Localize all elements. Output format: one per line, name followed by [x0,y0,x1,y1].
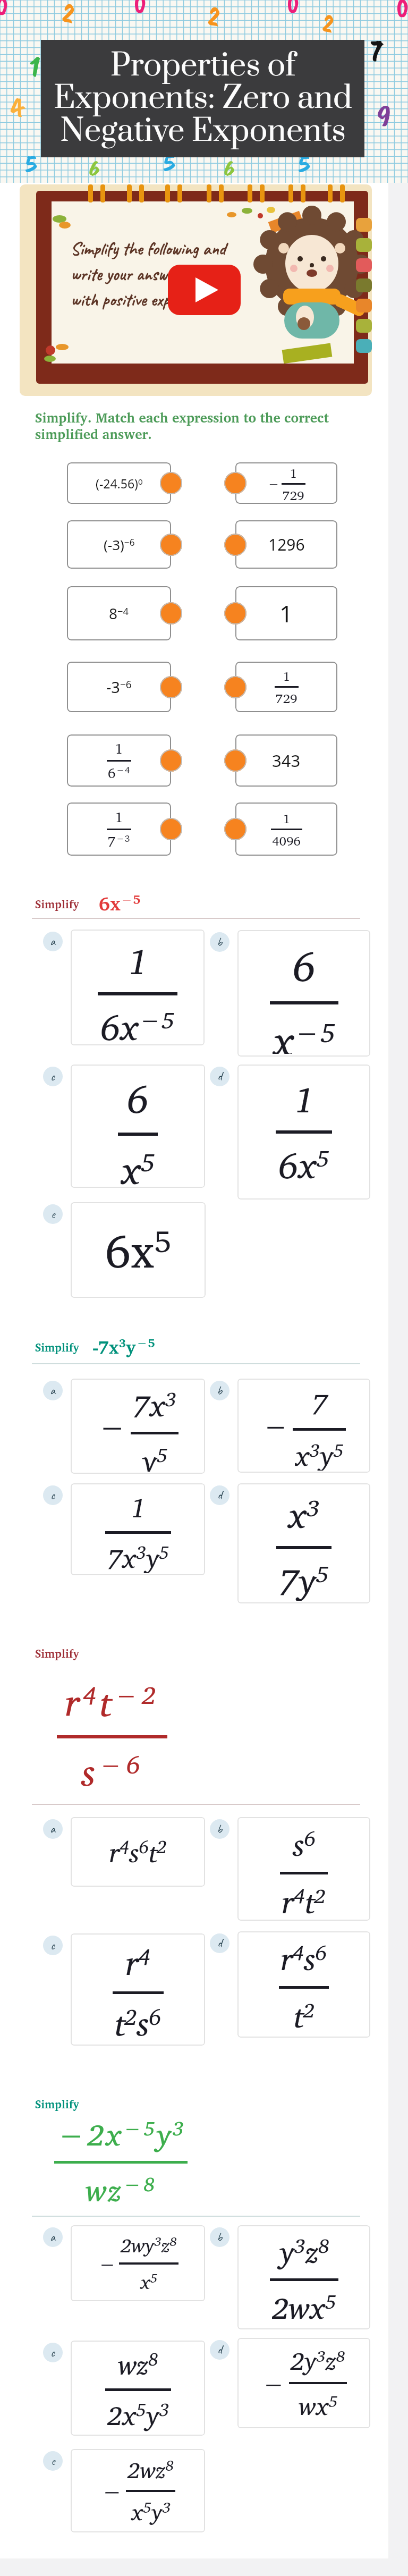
staticText: 6 [88,154,101,183]
button[interactable]: 1296 [235,520,337,569]
staticText: 6−4 [108,762,130,784]
button[interactable]: -3−6 [67,662,171,712]
button[interactable]: 6 [237,930,370,1057]
button[interactable]: (-3)−6 [67,520,171,569]
staticText: 729 [283,485,304,504]
button[interactable]: wz8 [71,2341,205,2436]
button[interactable]: − [237,1379,370,1473]
staticText: 7x3y5 [107,1536,169,1573]
staticText: r4s6t2 [109,1830,167,1874]
button[interactable]: 1 [237,1065,370,1200]
staticText: 5 [25,148,37,180]
button[interactable]: s6 [237,1817,370,1921]
staticText: s6 [293,1819,316,1870]
staticText: 5 [164,147,175,179]
staticText: t2s6 [115,1996,161,2043]
staticText: Simplify. Match each expression to the c… [35,407,329,428]
staticText: x−5 [273,1007,336,1054]
staticText: -7x3y−5 [92,1332,155,1362]
button[interactable]: (-24.56)0 [67,462,171,504]
staticText: 6x5 [105,1213,172,1288]
button[interactable]: r4s6t2 [71,1817,205,1887]
staticText: x3 [288,1486,320,1543]
staticText: − [97,1402,127,1451]
staticText: 0 [134,0,147,21]
staticText: 1 [279,597,293,629]
staticText: s−6 [81,1741,143,1802]
staticText: d [217,2342,223,2358]
staticText: 6x−5 [99,888,141,919]
staticText: 7x3 [133,1381,176,1430]
staticText: r4t−2 [65,1671,159,1733]
staticText: 6 [223,154,236,183]
staticText: x3y5 [295,1433,344,1471]
button[interactable]: Simplify the following and [20,184,372,396]
staticText: d [217,1488,223,1503]
staticText: 2wy3z8 [121,2229,177,2261]
staticText: x5y3 [131,2494,171,2530]
button[interactable]: x3 [237,1483,370,1603]
staticText: c [50,1938,55,1953]
staticText: x5 [121,1138,155,1185]
staticText: 2y3z8 [291,2341,345,2380]
staticText: t2 [294,1991,314,2036]
staticText: 1 [294,1070,314,1128]
staticText: Simplify [35,2095,80,2113]
staticText: wz−8 [86,2166,156,2215]
staticText: with positive exponents [71,288,210,311]
button[interactable]: y3z8 [237,2225,370,2329]
button[interactable]: − [235,462,337,504]
staticText: r4 [126,1936,150,1989]
staticText: a [50,1821,56,1837]
button[interactable]: r4 [71,1933,205,2046]
staticText: 7y5 [279,1552,329,1601]
staticText: b [217,1821,223,1837]
staticText: 2wx5 [272,2283,336,2327]
button[interactable]: 1 [235,662,337,712]
button[interactable]: 6x5 [71,1202,206,1298]
button[interactable]: 6 [71,1065,205,1188]
staticText: 1 [131,1485,146,1529]
staticText: Simplify the following and [71,237,226,260]
staticText: 1 [115,806,123,829]
button[interactable]: 1 [235,586,337,640]
staticText: e [51,1206,55,1222]
staticText: b [217,2229,223,2245]
staticText: 6x5 [278,1136,329,1194]
staticText: c [50,1488,55,1503]
staticText: 729 [276,688,297,708]
button[interactable]: 1 [67,734,171,787]
staticText: a [50,2229,56,2245]
button[interactable]: 8−4 [67,586,171,640]
button[interactable]: − [71,1379,205,1474]
staticText: 2wz8 [127,2452,174,2488]
staticText: 6 [293,933,316,999]
button[interactable]: − [71,2449,205,2532]
staticText: d [217,1936,223,1951]
staticText: 5 [299,148,310,180]
staticText: 1 [283,665,291,686]
staticText: −2x−5y3 [56,2110,185,2159]
button[interactable]: 1 [235,803,337,856]
button[interactable]: − [71,2225,205,2301]
staticText: Simplify [35,1644,80,1662]
staticText: − [267,473,280,494]
button[interactable]: 1 [71,1483,205,1575]
staticText: 9 [377,97,391,134]
button[interactable]: − [237,2338,370,2428]
staticText: (-3)−6 [104,535,135,554]
staticText: b [217,934,223,950]
button[interactable]: 343 [235,734,337,787]
button[interactable]: 1 [67,803,171,856]
staticText: a [50,1383,56,1398]
staticText: (-24.56)0 [96,475,143,492]
staticText: 7−3 [108,830,130,853]
staticText: b [217,1383,223,1398]
staticText: 2 [206,0,222,35]
button[interactable]: 1 [71,930,205,1045]
staticText: 7 [371,31,384,71]
staticText: wx5 [299,2386,338,2426]
staticText: r4s6 [281,1933,327,1984]
button[interactable]: r4s6 [237,1931,370,2038]
staticText: x5 [140,2266,158,2298]
